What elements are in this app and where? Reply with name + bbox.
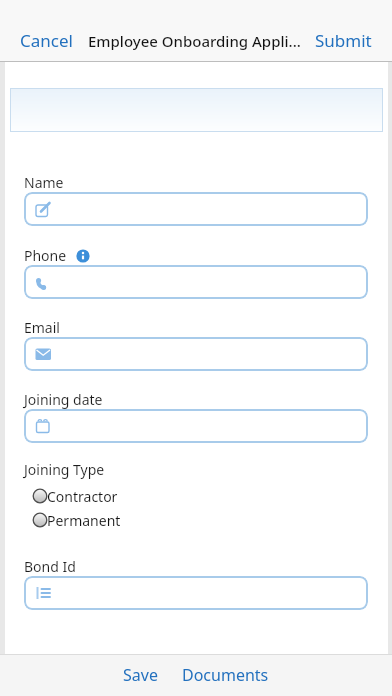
staticText: Documents xyxy=(182,664,269,686)
button[interactable]: Cancel xyxy=(20,29,73,52)
button[interactable]: Permanent xyxy=(33,508,121,532)
staticText: Contractor xyxy=(47,487,118,506)
staticText: Bond Id xyxy=(24,557,76,576)
staticText: Phone xyxy=(24,246,67,265)
staticText: Save xyxy=(123,664,158,686)
button[interactable]: Documents xyxy=(170,664,281,686)
staticText: Submit xyxy=(315,29,372,52)
button[interactable] xyxy=(24,265,368,299)
button[interactable]: Save xyxy=(111,664,170,686)
button[interactable]: Submit xyxy=(315,29,372,52)
button[interactable] xyxy=(24,192,368,226)
button[interactable]: Contractor xyxy=(33,484,118,508)
staticText: Cancel xyxy=(20,29,73,52)
staticText: Name xyxy=(24,173,64,192)
staticText: Email xyxy=(24,318,60,337)
staticText: Joining Type xyxy=(24,460,105,479)
button[interactable] xyxy=(24,576,368,610)
button[interactable] xyxy=(24,409,368,443)
staticText: Employee Onboarding Appli... xyxy=(88,31,301,51)
button[interactable] xyxy=(24,337,368,371)
staticText: Permanent xyxy=(47,511,121,530)
staticText: Joining date xyxy=(24,390,103,409)
